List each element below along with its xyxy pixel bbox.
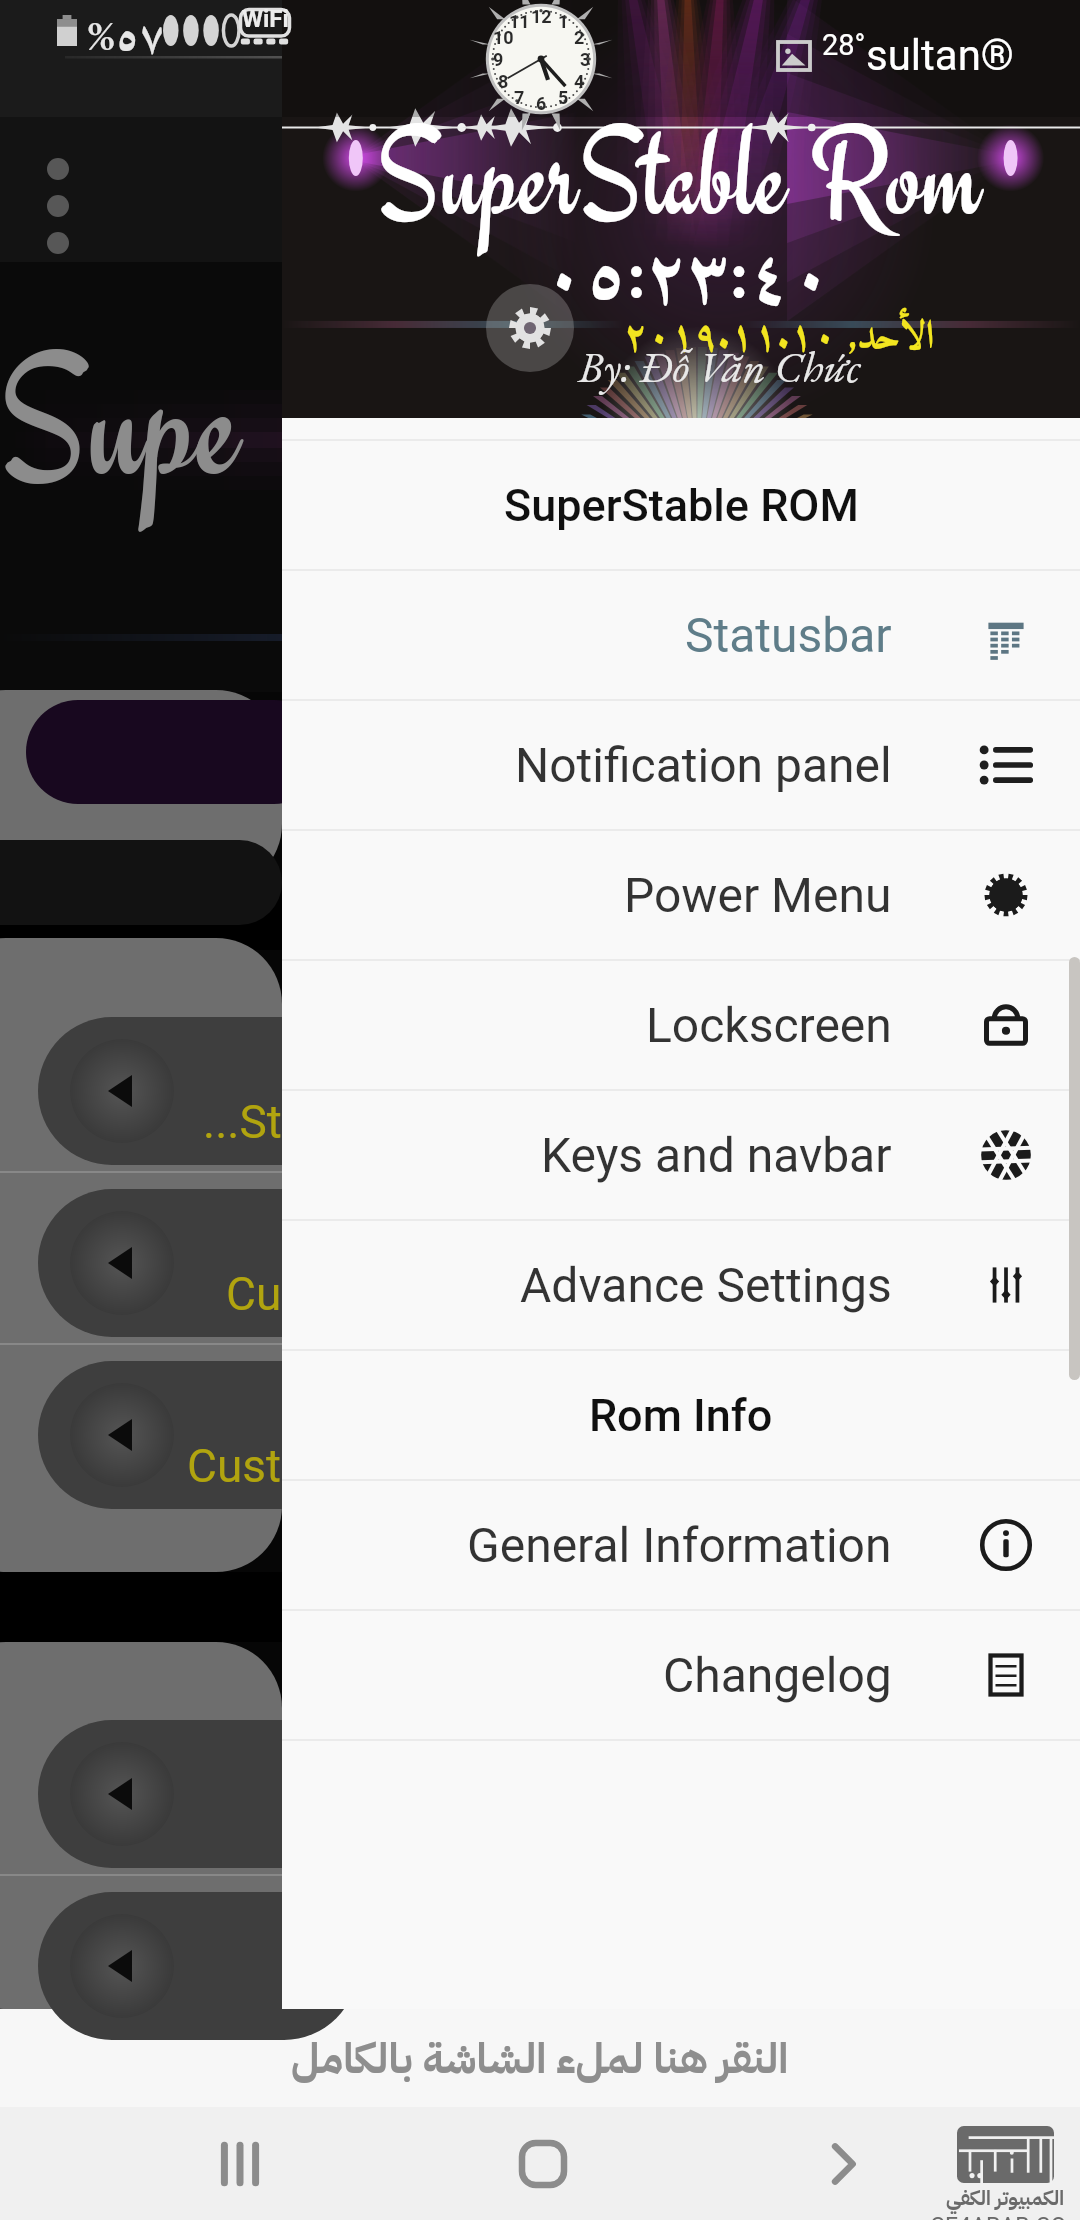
staticText: Advance Settings [520,1257,892,1313]
staticText: Cust [187,1439,282,1493]
button[interactable]: Advance Settings [282,1221,1080,1349]
staticText: Notification panel [515,737,892,793]
staticText: 8 [498,71,509,92]
staticText: Changelog [663,1647,892,1703]
staticText: SuperStable ROM [504,479,859,532]
staticText: الأحد, ٢٠١٩.١١.١٠ [624,303,935,373]
button[interactable]: Notification panel [282,701,1080,829]
staticText: sultan® [866,31,1014,80]
staticText: Power Menu [624,867,892,923]
staticText: Statusbar [685,607,892,663]
staticText: 4 [574,71,585,92]
staticText: 7 [514,87,525,108]
staticText: 6 [536,93,547,114]
staticText: Keys and navbar [541,1127,892,1183]
staticText: 10 [493,27,514,48]
staticText: %٥٧ [87,3,165,65]
staticText: Cu [226,1267,282,1321]
button[interactable]: Lockscreen [282,961,1080,1089]
staticText: 28° [822,28,866,62]
staticText: 3 [580,49,591,70]
staticText: WiFi [242,5,289,33]
staticText: 9 [493,49,504,70]
staticText: ٠٥:٢٣:٤٠ [543,217,833,344]
staticText: Rom Info [589,1389,773,1442]
button[interactable]: General Information [282,1481,1080,1609]
staticText: SuperStable Rom [376,98,982,256]
button[interactable]: Keys and navbar [282,1091,1080,1219]
staticText: CE4ARAB.COM [930,2213,1080,2220]
button[interactable]: Home [463,2107,623,2220]
staticText: Lockscreen [646,997,892,1053]
staticText: General Information [467,1517,892,1573]
button[interactable]: Changelog [282,1611,1080,1739]
staticText: 1 [558,11,569,32]
staticText: 12 [531,6,552,27]
button[interactable]: Settings [486,284,574,372]
button[interactable]: Recent apps [160,2107,320,2220]
staticText: النقر هنا لملء الشاشة بالكامل [291,2027,789,2090]
button[interactable]: Statusbar [282,571,1080,699]
staticText: Supe [0,312,241,532]
button[interactable]: Back [763,2107,923,2220]
staticText: ...St [203,1095,282,1149]
staticText: الكمبيوتر الكفي [946,2183,1065,2213]
staticText: 11 [509,11,530,32]
staticText: 5 [558,87,569,108]
button[interactable]: Power Menu [282,831,1080,959]
staticText: By: Đỗ Văn Chức [578,338,861,395]
staticText: 2 [574,27,585,48]
